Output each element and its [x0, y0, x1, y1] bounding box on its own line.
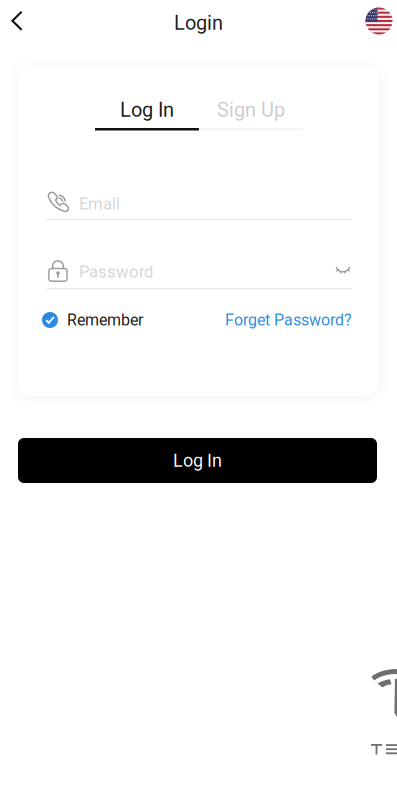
button[interactable]: Show password: [328, 256, 358, 284]
button[interactable]: Log In: [18, 438, 377, 483]
staticText: Forget Password?: [225, 311, 352, 329]
staticText: Password: [79, 262, 153, 281]
button[interactable]: Forget Password?: [222, 310, 352, 330]
staticText: Log In: [120, 98, 174, 122]
button[interactable]: Back: [0, 0, 34, 42]
button[interactable]: Log In: [95, 97, 199, 133]
staticText: Log In: [173, 450, 222, 471]
button[interactable]: Select language: [360, 2, 397, 40]
staticText: Login: [174, 11, 223, 35]
staticText: Remember: [67, 311, 143, 329]
button[interactable]: Sign Up: [199, 97, 303, 133]
button[interactable]: Remember: [42, 310, 143, 330]
staticText: Email: [79, 194, 120, 213]
staticText: Sign Up: [217, 98, 285, 122]
